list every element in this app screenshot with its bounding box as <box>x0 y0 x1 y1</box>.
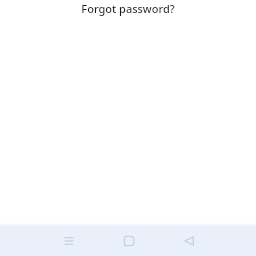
button[interactable]: Home <box>116 228 142 254</box>
staticText: Forgot password? <box>81 1 175 16</box>
button[interactable]: Back <box>176 228 202 254</box>
button[interactable]: Recent apps <box>56 228 82 254</box>
